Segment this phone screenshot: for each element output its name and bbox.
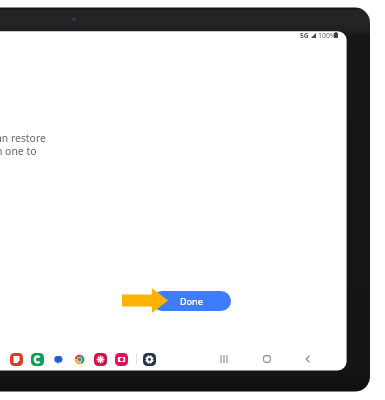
staticText: h one to	[0, 144, 37, 158]
button[interactable]: Messages	[52, 353, 65, 366]
button[interactable]: Camera	[115, 353, 128, 366]
staticText: Done	[180, 295, 203, 307]
button[interactable]: Home	[260, 352, 274, 366]
button[interactable]: Done	[152, 291, 231, 311]
button[interactable]: Chrome	[73, 353, 86, 366]
button[interactable]: Photos	[94, 353, 107, 366]
staticText: an restore	[0, 131, 46, 145]
staticText: 100%	[318, 31, 336, 41]
staticText: 5G	[300, 31, 309, 40]
other: Pointer	[122, 288, 168, 313]
button[interactable]: Back	[301, 352, 315, 366]
button[interactable]: Recent apps	[217, 352, 231, 366]
button[interactable]: Files	[10, 353, 23, 366]
button[interactable]: Phone	[31, 353, 44, 366]
button[interactable]: Settings	[143, 353, 156, 366]
